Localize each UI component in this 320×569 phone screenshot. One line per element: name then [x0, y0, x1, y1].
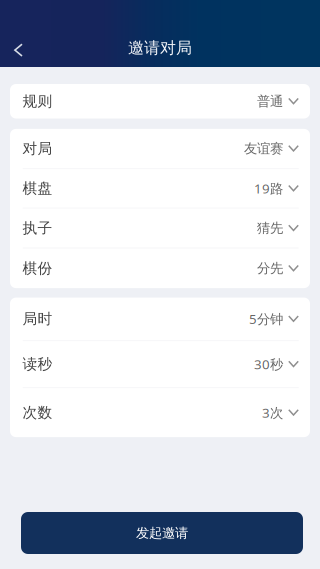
staticText: 5分钟	[249, 310, 283, 328]
button[interactable]: 对局	[10, 129, 310, 168]
staticText: 对局	[22, 139, 52, 157]
staticText: 执子	[22, 219, 52, 237]
button[interactable]: 规则	[10, 84, 310, 118]
staticText: 棋盘	[22, 179, 52, 197]
button[interactable]: 执子	[10, 209, 310, 247]
staticText: 发起邀请	[136, 525, 188, 541]
staticText: 局时	[22, 310, 52, 328]
staticText: 邀请对局	[128, 38, 192, 58]
staticText: 30秒	[254, 355, 283, 373]
button[interactable]: 次数	[10, 388, 310, 437]
staticText: 普通	[257, 93, 283, 109]
button[interactable]: 发起邀请	[21, 512, 303, 554]
staticText: 次数	[22, 404, 52, 422]
staticText: 读秒	[22, 355, 52, 373]
staticText: 棋份	[22, 259, 52, 277]
button[interactable]: 棋份	[10, 248, 310, 288]
staticText: 3次	[262, 404, 283, 421]
staticText: 规则	[22, 92, 52, 110]
staticText: 猜先	[257, 220, 283, 236]
button[interactable]: Back	[0, 0, 34, 67]
button[interactable]: 局时	[10, 298, 310, 340]
staticText: 友谊赛	[244, 140, 283, 157]
button[interactable]: 棋盘	[10, 169, 310, 208]
staticText: 分先	[257, 260, 283, 276]
button[interactable]: 读秒	[10, 341, 310, 387]
staticText: 19路	[254, 179, 283, 197]
